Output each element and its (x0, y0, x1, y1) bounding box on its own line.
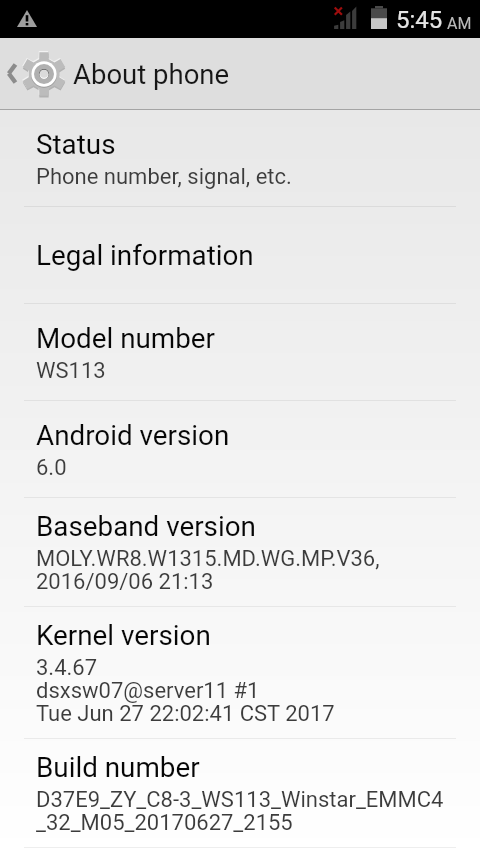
staticText: Model number (36, 325, 216, 354)
staticText: Build number (36, 754, 200, 783)
button[interactable]: Baseband version (0, 498, 480, 606)
staticText: MOLY.WR8.W1315.MD.WG.MP.V36, 2016/09/06 … (36, 548, 380, 594)
button[interactable]: Model number (0, 304, 480, 400)
button[interactable]: Status (0, 110, 480, 206)
staticText: Android version (36, 422, 230, 451)
button[interactable]: Navigate up (0, 38, 68, 109)
staticText: Status (36, 131, 116, 160)
staticText: About phone (73, 58, 230, 90)
button[interactable]: Kernel version (0, 607, 480, 738)
button[interactable]: Build number (0, 739, 480, 847)
staticText: Kernel version (36, 622, 211, 651)
button[interactable]: Legal information (0, 207, 480, 303)
staticText: 5:45 (396, 6, 443, 34)
staticText: D37E9_ZY_C8-3_WS113_Winstar_EMMC4 _32_M0… (36, 789, 444, 835)
staticText: Legal information (36, 242, 254, 271)
staticText: AM (447, 14, 472, 33)
staticText: Baseband version (36, 513, 256, 542)
staticText: Phone number, signal, etc. (36, 166, 292, 189)
staticText: 6.0 (36, 457, 67, 480)
staticText: 3.4.67 dsxsw07@server11 #1 Tue Jun 27 22… (36, 657, 335, 726)
staticText: WS113 (36, 360, 106, 383)
button[interactable]: Android version (0, 401, 480, 497)
